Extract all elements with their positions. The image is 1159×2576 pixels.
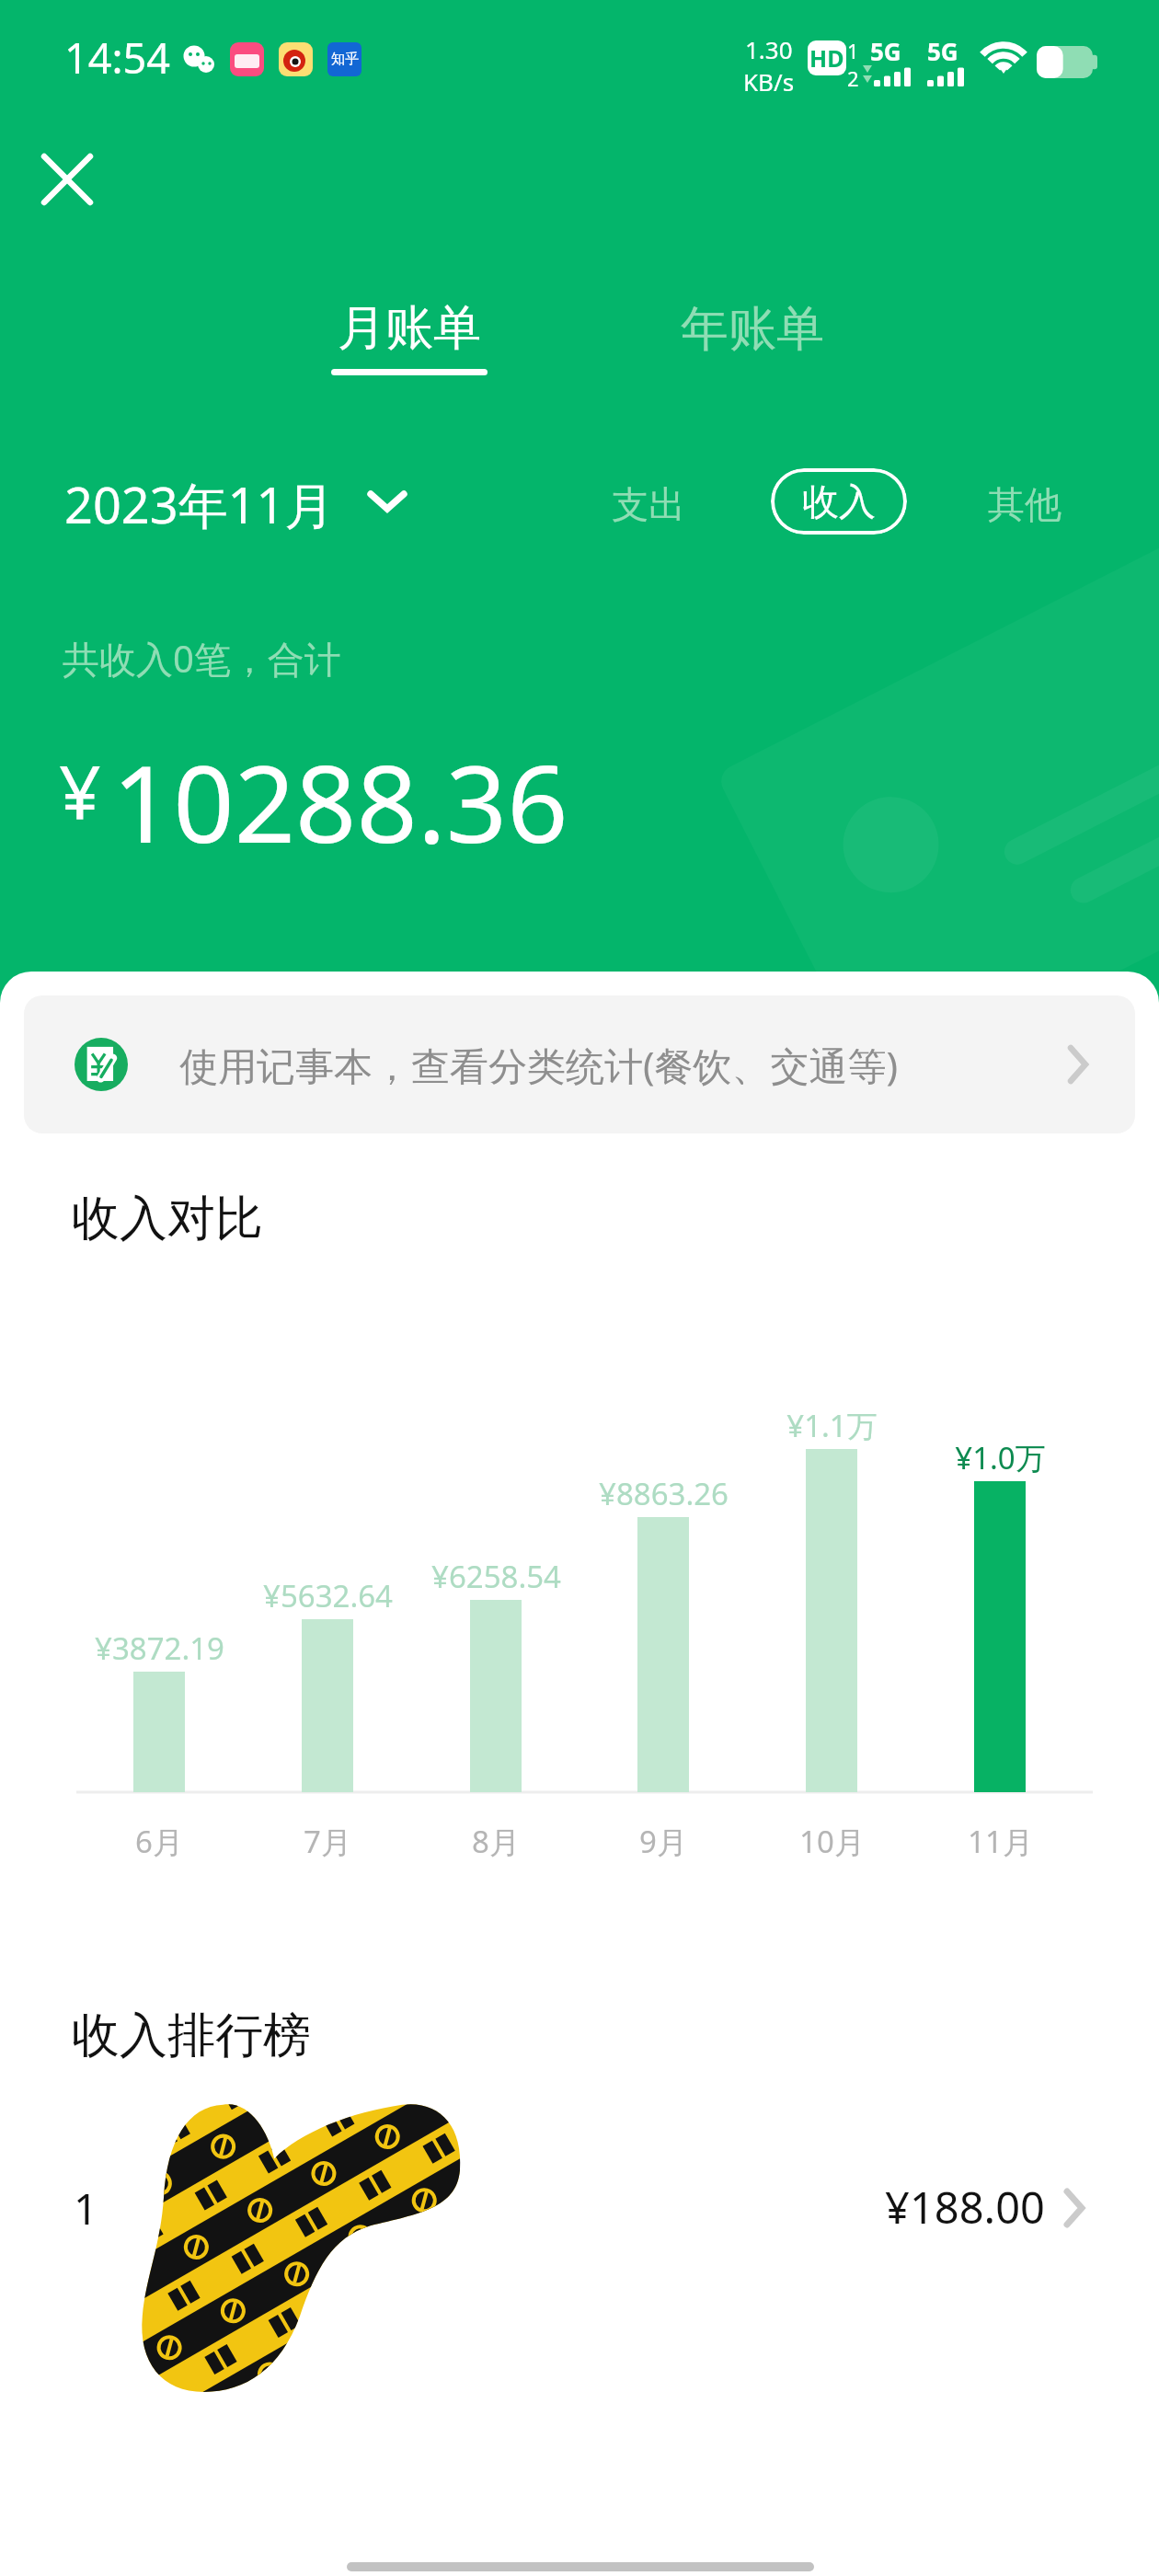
staticText: 收入对比: [72, 1189, 263, 1249]
staticText: ¥5632.64: [263, 1575, 393, 1616]
staticText: ¥3872.19: [95, 1627, 224, 1669]
staticText: ¥6258.54: [431, 1556, 561, 1597]
button[interactable]: 1: [0, 2107, 1159, 2309]
staticText: ¥1.1万: [786, 1405, 878, 1446]
staticText: 使用记事本，查看分类统计(餐饮、交通等): [179, 1039, 899, 1091]
button[interactable]: 8月 ¥6258.54: [470, 1600, 522, 1792]
staticText: 1.30: [745, 33, 793, 65]
staticText: KB/s: [743, 65, 795, 98]
staticText: 8月: [472, 1821, 520, 1862]
staticText: 14:54: [64, 29, 171, 86]
staticText: 7月: [304, 1821, 351, 1862]
staticText: 10月: [799, 1821, 865, 1862]
staticText: 6月: [135, 1821, 183, 1862]
staticText: 1: [847, 37, 859, 64]
button[interactable]: 9月 ¥8863.26: [637, 1517, 689, 1792]
staticText: 收入排行榜: [72, 2006, 311, 2066]
staticText: 10288.36: [112, 729, 568, 874]
staticText: 2023年11月: [64, 470, 335, 538]
staticText: 11月: [968, 1821, 1033, 1862]
staticText: 月账单: [338, 298, 481, 359]
staticText: 5G: [870, 35, 901, 67]
button[interactable]: 使用记事本，查看分类统计(餐饮、交通等): [24, 995, 1135, 1133]
staticText: 2: [847, 64, 859, 92]
staticText: HD: [809, 42, 844, 74]
staticText: 支出: [612, 481, 685, 527]
button[interactable]: 年账单: [661, 293, 843, 383]
button[interactable]: 11月 ¥1.0万: [974, 1481, 1026, 1792]
staticText: ¥1.0万: [955, 1437, 1046, 1478]
staticText: ¥188.00: [885, 2178, 1045, 2237]
button[interactable]: 收入: [771, 468, 907, 535]
staticText: 5G: [927, 35, 958, 67]
staticText: 共收入0笔，合计: [63, 633, 341, 684]
button[interactable]: 6月 ¥3872.19: [133, 1672, 185, 1792]
button[interactable]: 7月 ¥5632.64: [302, 1619, 353, 1792]
staticText: 1: [74, 2179, 98, 2237]
button[interactable]: Close: [31, 144, 103, 215]
button[interactable]: 支出: [596, 469, 701, 539]
staticText: 其他: [988, 481, 1061, 527]
staticText: 9月: [639, 1821, 687, 1862]
button[interactable]: 月账单: [317, 293, 501, 383]
button[interactable]: 2023年11月: [64, 465, 408, 544]
staticText: ¥8863.26: [599, 1473, 729, 1514]
button[interactable]: 其他: [972, 469, 1077, 539]
staticText: 知乎: [331, 51, 359, 68]
staticText: ¥: [59, 740, 101, 840]
staticText: 年账单: [681, 299, 824, 360]
staticText: 收入: [802, 478, 876, 524]
